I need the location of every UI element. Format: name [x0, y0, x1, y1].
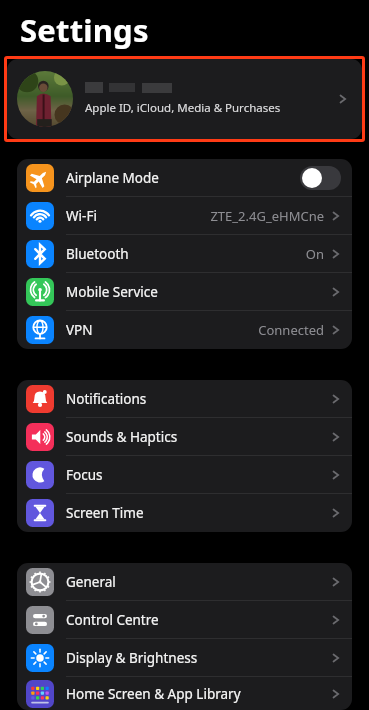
button[interactable]: Screen Time: [17, 494, 352, 532]
staticText: Display & Brightness: [66, 649, 198, 667]
button[interactable]: Sounds & Haptics: [17, 418, 352, 456]
button[interactable]: Control Centre: [17, 601, 352, 639]
staticText: Settings: [20, 9, 149, 51]
staticText: Airplane Mode: [66, 169, 159, 187]
button[interactable]: Airplane Mode toggle: [300, 166, 341, 190]
button[interactable]: Focus: [17, 456, 352, 494]
staticText: ZTE_2.4G_eHMCne: [210, 207, 324, 225]
button[interactable]: VPN: [17, 311, 352, 349]
staticText: Connected: [258, 321, 324, 339]
staticText: Focus: [66, 466, 103, 484]
staticText: Notifications: [66, 390, 147, 408]
button[interactable]: Notifications: [17, 380, 352, 418]
button[interactable]: Apple ID, iCloud, Media & Purchases: [7, 59, 362, 139]
staticText: Bluetooth: [66, 245, 129, 263]
button[interactable]: General: [17, 563, 352, 601]
staticText: Sounds & Haptics: [66, 428, 178, 446]
staticText: Mobile Service: [66, 283, 158, 301]
staticText: Apple ID, iCloud, Media & Purchases: [85, 100, 281, 116]
button[interactable]: Home Screen & App Library: [17, 677, 352, 710]
staticText: VPN: [66, 321, 93, 339]
staticText: Home Screen & App Library: [66, 685, 241, 703]
staticText: On: [305, 245, 324, 263]
button[interactable]: Bluetooth: [17, 235, 352, 273]
staticText: Screen Time: [66, 504, 144, 522]
staticText: Wi-Fi: [66, 207, 97, 225]
staticText: General: [66, 573, 116, 591]
button[interactable]: Display & Brightness: [17, 639, 352, 677]
button[interactable]: Airplane Mode: [17, 159, 352, 197]
button[interactable]: Mobile Service: [17, 273, 352, 311]
button[interactable]: Wi-Fi: [17, 197, 352, 235]
staticText: Control Centre: [66, 611, 159, 629]
